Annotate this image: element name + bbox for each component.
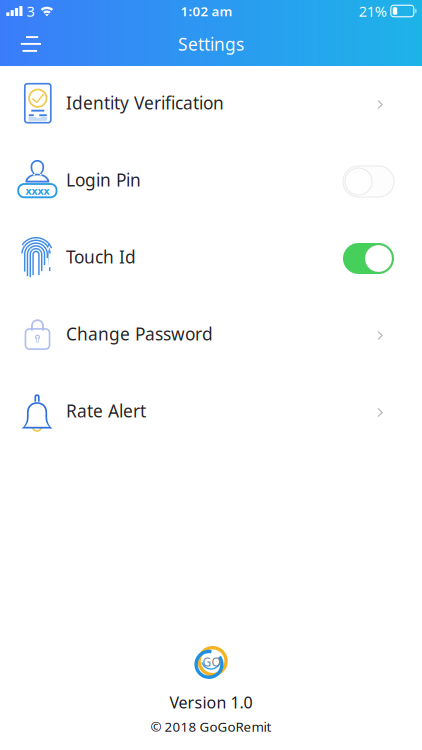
staticText: xxxx — [25, 184, 49, 198]
button[interactable]: Menu — [0, 23, 55, 65]
button[interactable]: xxxx — [0, 143, 422, 220]
staticText: © 2018 GoGoRemit — [150, 718, 271, 735]
button[interactable]: Rate Alert — [0, 374, 422, 451]
staticText: Touch Id — [66, 245, 136, 268]
staticText: Settings — [178, 32, 244, 55]
staticText: GO — [203, 654, 221, 670]
staticText: Rate Alert — [66, 399, 146, 422]
button[interactable]: Touch Id — [0, 220, 422, 297]
staticText: Change Password — [66, 322, 213, 345]
staticText: 21% — [359, 1, 387, 21]
staticText: Identity Verification — [66, 91, 224, 114]
staticText: Version 1.0 — [169, 691, 252, 713]
staticText: 1:02 am — [180, 2, 232, 20]
staticText: Login Pin — [66, 168, 141, 191]
button[interactable]: Identity Verification — [0, 66, 422, 143]
staticText: 3 — [27, 1, 35, 21]
button[interactable]: Change Password — [0, 297, 422, 374]
